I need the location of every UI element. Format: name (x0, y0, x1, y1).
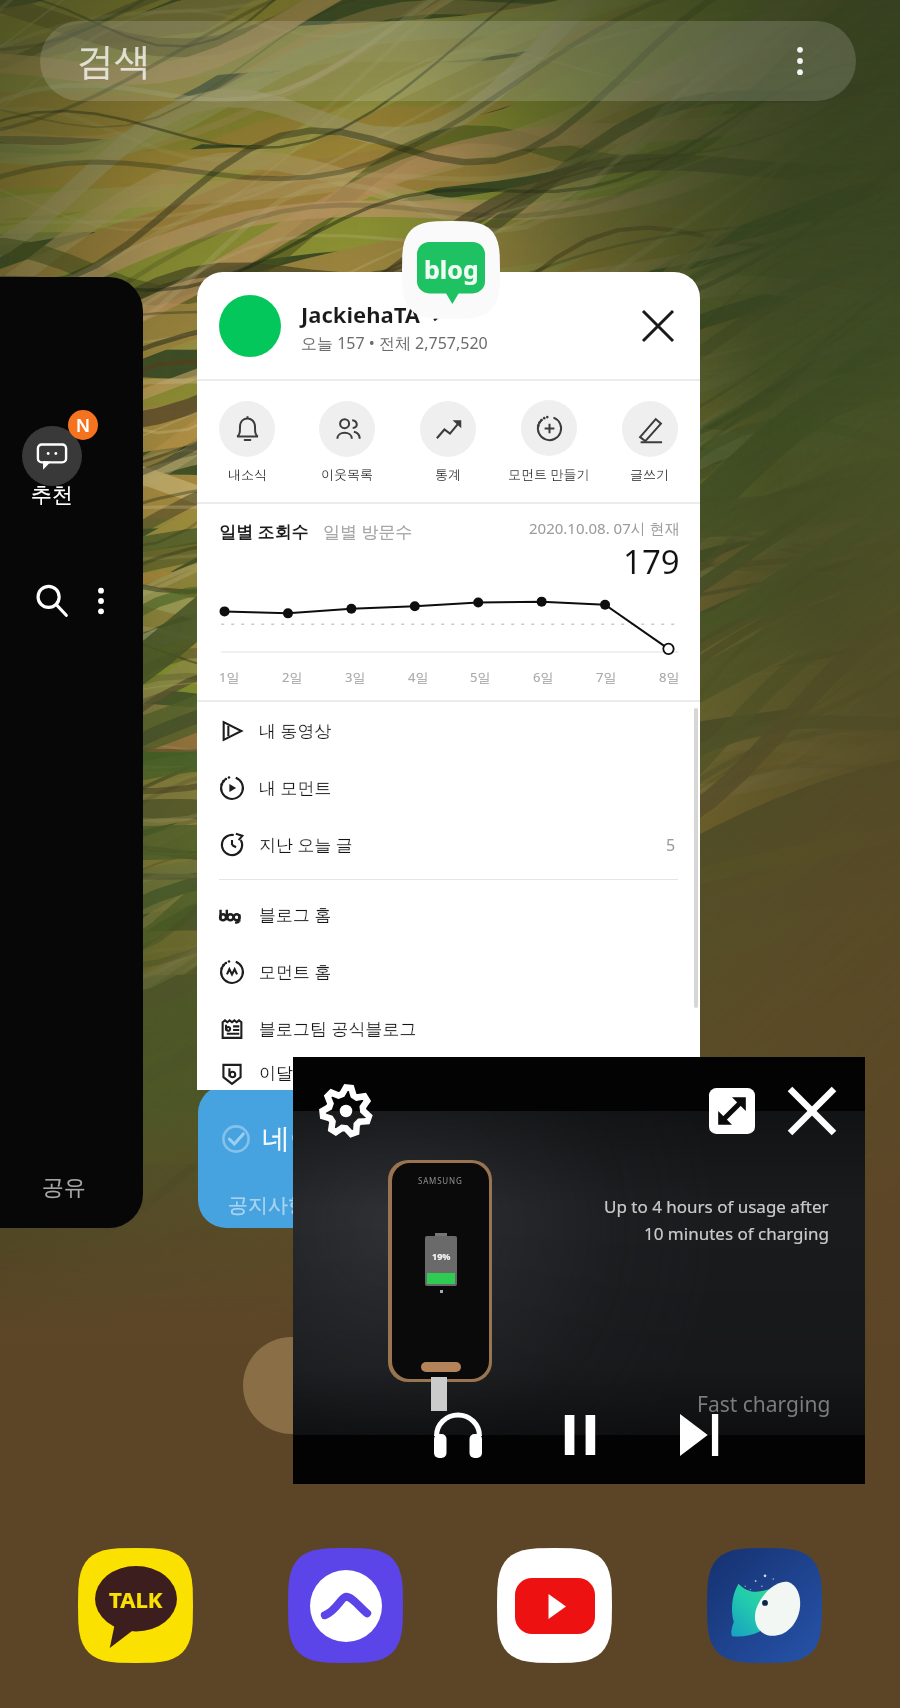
staticText: 모먼트 홈 (259, 960, 332, 983)
staticText: 블로그 홈 (259, 903, 332, 926)
button[interactable]: More (77, 577, 125, 625)
staticText: 검색 (77, 38, 151, 85)
button[interactable]: 일별 조회수 (219, 520, 309, 543)
staticText: 19% (432, 1250, 451, 1262)
button[interactable]: Whale (707, 1548, 822, 1663)
staticText: TALK (109, 1584, 163, 1614)
staticText: 5 (666, 834, 676, 856)
button[interactable]: 검색 (40, 21, 856, 101)
button[interactable]: 다음 (664, 1398, 738, 1472)
button[interactable]: 네이 (198, 1085, 448, 1228)
staticText: 통계 (435, 466, 461, 482)
button[interactable]: 공유 (34, 1166, 94, 1210)
button[interactable]: More options (772, 33, 828, 89)
button[interactable]: Band (288, 1548, 403, 1663)
staticText: 179 (623, 539, 680, 584)
button[interactable]: 블로그팀 공식블로그 (197, 1000, 700, 1057)
staticText: N (76, 413, 90, 438)
button[interactable]: 설정 (315, 1080, 377, 1142)
button[interactable]: 일시정지 (543, 1398, 617, 1472)
staticText: 3일 (345, 668, 366, 686)
button[interactable]: 이웃목록 (297, 381, 397, 502)
staticText: 글쓰기 (630, 466, 669, 482)
staticText: 8일 (659, 668, 680, 686)
staticText: 추천 (31, 482, 73, 508)
button[interactable]: 닫기 (783, 1082, 841, 1140)
staticText: 4일 (408, 668, 429, 686)
staticText: SAMSUNG (418, 1175, 463, 1186)
button[interactable]: YouTube (497, 1548, 612, 1663)
staticText: 모먼트 만들기 (508, 465, 590, 483)
button[interactable]: 내 동영상 (197, 702, 700, 759)
button[interactable]: blog (402, 221, 500, 319)
button[interactable]: 내소식 (197, 381, 297, 502)
button[interactable]: 닫기 (632, 300, 684, 352)
staticText: 오늘 157 • 전체 2,757,520 (301, 332, 488, 354)
staticText: 공유 (42, 1174, 86, 1202)
staticText: 5일 (470, 668, 491, 686)
staticText: 내소식 (228, 466, 267, 482)
button[interactable]: 지난 오늘 글 (197, 816, 700, 873)
button[interactable]: 모먼트 만들기 (498, 381, 599, 502)
staticText: 내 모먼트 (259, 776, 332, 799)
staticText: 이웃목록 (321, 466, 373, 482)
staticText: JackiehaTA (301, 299, 421, 329)
button[interactable]: JackiehaTA (301, 299, 446, 329)
staticText: 6일 (533, 668, 554, 686)
button[interactable]: 이달의 (197, 1057, 700, 1090)
staticText: 블로그팀 공식블로그 (259, 1017, 417, 1040)
button[interactable]: 모먼트 홈 (197, 943, 700, 1000)
staticText: 2일 (282, 668, 303, 686)
button[interactable]: 글쓰기 (599, 381, 700, 502)
button[interactable]: KakaoTalk (78, 1548, 193, 1663)
staticText: 네이 (262, 1121, 318, 1156)
staticText: 7일 (596, 668, 617, 686)
button[interactable]: 통계 (397, 381, 498, 502)
button[interactable]: 헤드폰 (421, 1398, 495, 1472)
staticText: Fast charging (697, 1390, 831, 1419)
staticText: 2020.10.08. 07시 현재 (529, 518, 680, 538)
staticText: 내 동영상 (259, 719, 332, 742)
button[interactable]: 블로그 홈 (197, 886, 700, 943)
button[interactable]: 일별 방문수 (323, 520, 413, 543)
staticText: 이달의 (259, 1063, 310, 1084)
staticText: 10 minutes of charging (644, 1222, 829, 1245)
button[interactable]: 전체화면 (703, 1082, 761, 1140)
button[interactable]: Search (28, 577, 76, 625)
staticText: 지난 오늘 글 (259, 833, 353, 856)
staticText: 1일 (219, 668, 240, 686)
button[interactable]: 내 모먼트 (197, 759, 700, 816)
button[interactable]: 추천 (22, 426, 82, 486)
staticText: 공지사항 (228, 1193, 308, 1218)
staticText: blog (424, 252, 479, 286)
staticText: Up to 4 hours of usage after (604, 1195, 829, 1218)
